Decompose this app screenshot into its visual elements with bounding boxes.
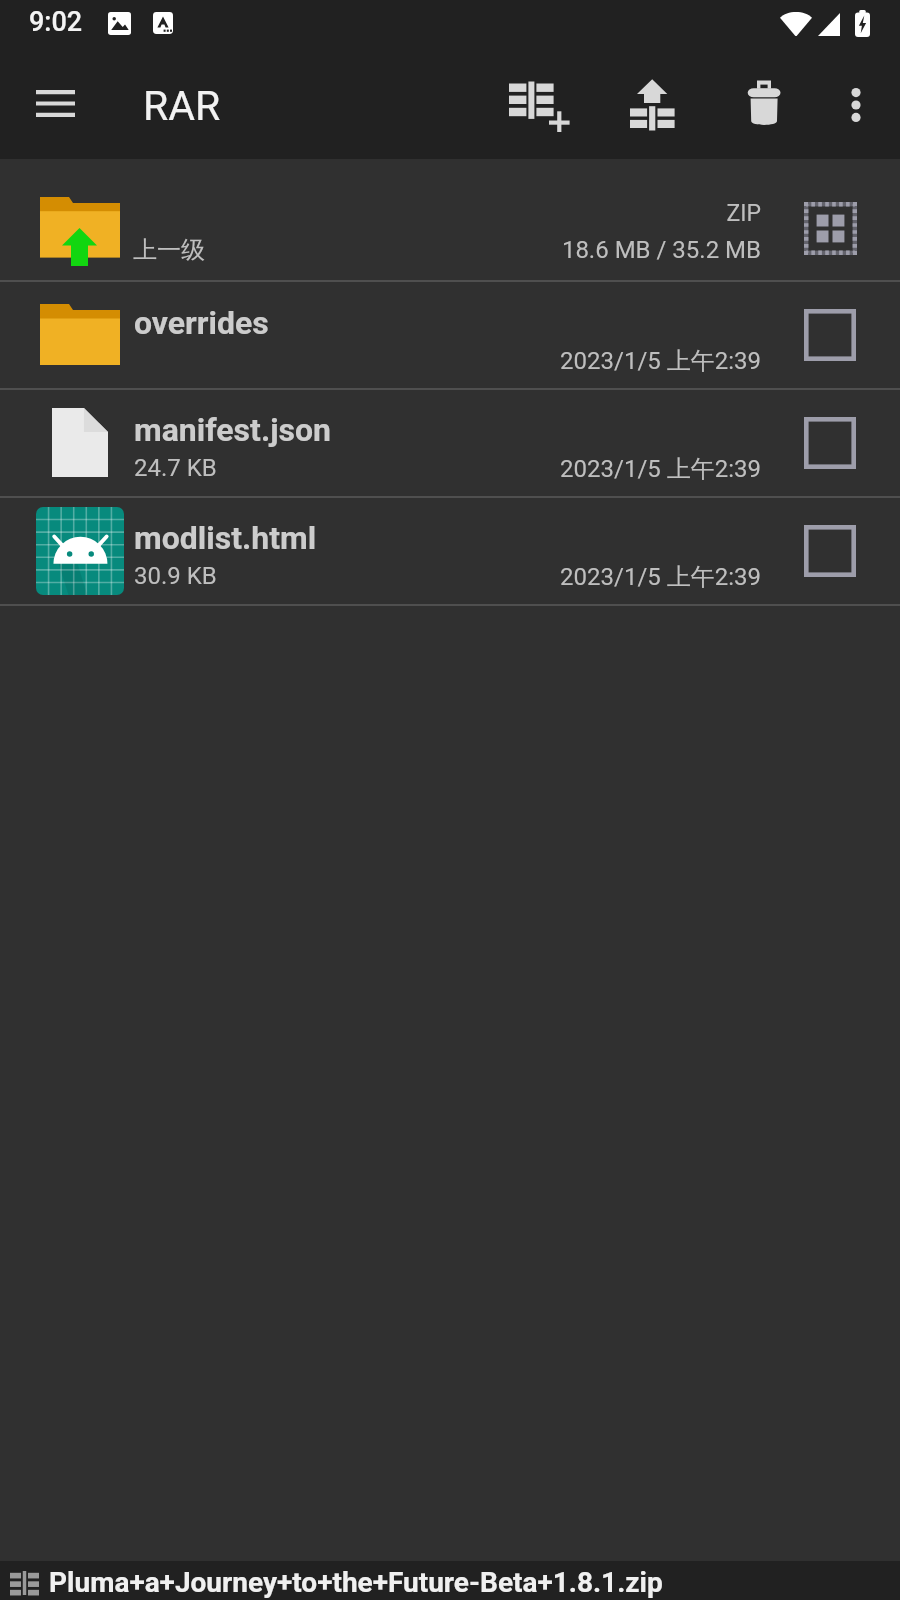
- staticText: 上一级: [133, 235, 205, 265]
- button[interactable]: Select all: [794, 192, 866, 264]
- staticText: 9:02: [29, 6, 83, 38]
- staticText: modlist.html: [134, 519, 317, 557]
- button[interactable]: Add to archive: [496, 65, 584, 149]
- staticText: ZIP: [460, 200, 761, 227]
- button[interactable]: Open navigation menu: [11, 60, 100, 149]
- staticText: manifest.json: [134, 411, 331, 449]
- button[interactable]: Pluma+a+Journey+to+the+Future-Beta+1.8.1…: [0, 1561, 900, 1600]
- button[interactable]: Select item: [794, 515, 866, 587]
- staticText: 18.6 MB / 35.2 MB: [460, 236, 761, 264]
- staticText: 30.9 KB: [134, 562, 217, 590]
- button[interactable]: Extract files: [608, 62, 698, 146]
- staticText: RAR: [143, 82, 221, 130]
- staticText: overrides: [134, 304, 269, 342]
- button[interactable]: More options: [814, 63, 898, 147]
- button[interactable]: 上一级: [0, 159, 900, 280]
- button[interactable]: manifest.json: [0, 388, 900, 496]
- staticText: Pluma+a+Journey+to+the+Future-Beta+1.8.1…: [49, 1566, 663, 1599]
- staticText: 24.7 KB: [134, 454, 217, 482]
- staticText: 2023/1/5 上午2:39: [460, 562, 761, 592]
- button[interactable]: modlist.html: [0, 496, 900, 604]
- staticText: 2023/1/5 上午2:39: [460, 346, 761, 376]
- button[interactable]: overrides: [0, 280, 900, 388]
- staticText: 2023/1/5 上午2:39: [460, 454, 761, 484]
- button[interactable]: Delete: [722, 62, 806, 146]
- button[interactable]: Select item: [794, 407, 866, 479]
- button[interactable]: Select item: [794, 299, 866, 371]
